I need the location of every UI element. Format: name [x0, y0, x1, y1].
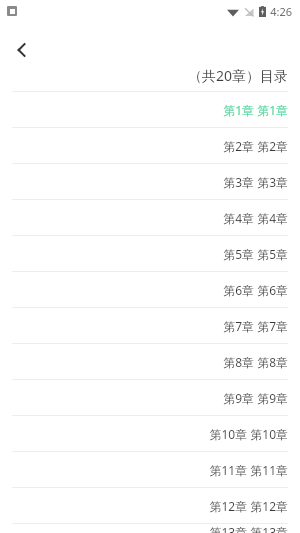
- staticText: 第12章 第12章: [209, 498, 288, 514]
- button[interactable]: 第13章 第13章: [0, 524, 300, 533]
- button[interactable]: 第5章 第5章: [0, 236, 300, 271]
- button[interactable]: 第7章 第7章: [0, 308, 300, 343]
- staticText: 第10章 第10章: [209, 426, 288, 442]
- staticText: （共20章）目录: [187, 66, 288, 85]
- button[interactable]: 第6章 第6章: [0, 272, 300, 307]
- button[interactable]: 第4章 第4章: [0, 200, 300, 235]
- staticText: 4:26: [270, 4, 292, 19]
- staticText: 第4章 第4章: [223, 210, 288, 226]
- button[interactable]: 第3章 第3章: [0, 164, 300, 199]
- staticText: 第7章 第7章: [223, 318, 288, 334]
- staticText: 第5章 第5章: [223, 246, 288, 262]
- button[interactable]: 第8章 第8章: [0, 344, 300, 379]
- button[interactable]: 第10章 第10章: [0, 416, 300, 451]
- button[interactable]: Back: [4, 32, 40, 68]
- staticText: 第2章 第2章: [223, 138, 288, 154]
- button[interactable]: 第2章 第2章: [0, 128, 300, 163]
- button[interactable]: 第11章 第11章: [0, 452, 300, 487]
- staticText: 第11章 第11章: [209, 462, 288, 478]
- staticText: 第6章 第6章: [223, 282, 288, 298]
- button[interactable]: 第9章 第9章: [0, 380, 300, 415]
- staticText: 第8章 第8章: [223, 354, 288, 370]
- button[interactable]: 第1章 第1章: [0, 92, 300, 127]
- staticText: 第3章 第3章: [223, 174, 288, 190]
- staticText: 第13章 第13章: [209, 524, 288, 533]
- staticText: 第1章 第1章: [223, 102, 288, 118]
- button[interactable]: 第12章 第12章: [0, 488, 300, 523]
- staticText: 第9章 第9章: [223, 390, 288, 406]
